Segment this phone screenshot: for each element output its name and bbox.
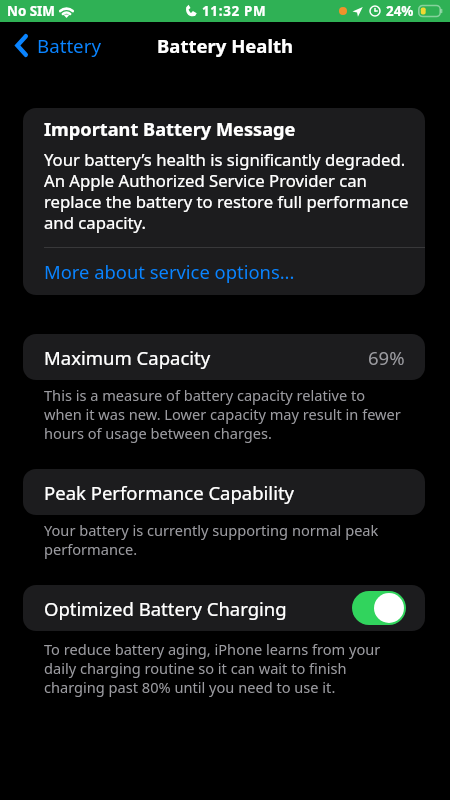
button[interactable]: Maximum Capacity xyxy=(23,334,425,380)
staticText: Battery Health xyxy=(157,33,293,58)
staticText: To reduce battery aging, iPhone learns f… xyxy=(44,640,404,697)
staticText: This is a measure of battery capacity re… xyxy=(44,386,404,443)
staticText: Peak Performance Capability xyxy=(44,480,295,505)
staticText: 24% xyxy=(386,2,414,20)
staticText: Important Battery Message xyxy=(44,117,296,142)
staticText: 69% xyxy=(368,345,405,370)
button[interactable]: More about service options... xyxy=(23,248,425,295)
staticText: Maximum Capacity xyxy=(44,345,211,370)
button[interactable]: Battery xyxy=(12,28,105,63)
button[interactable]: Peak Performance Capability xyxy=(23,469,425,515)
staticText: Optimized Battery Charging xyxy=(44,596,287,621)
staticText: No SIM xyxy=(7,2,55,20)
staticText: Battery xyxy=(37,33,101,58)
button[interactable]: Optimized Battery Charging, on xyxy=(352,591,406,625)
staticText: 11:32 PM xyxy=(202,2,267,20)
button[interactable]: Optimized Battery Charging xyxy=(23,585,425,631)
staticText: Your battery is currently supporting nor… xyxy=(44,521,404,559)
staticText: More about service options... xyxy=(44,259,295,284)
staticText: Your battery’s health is significantly d… xyxy=(44,149,414,233)
